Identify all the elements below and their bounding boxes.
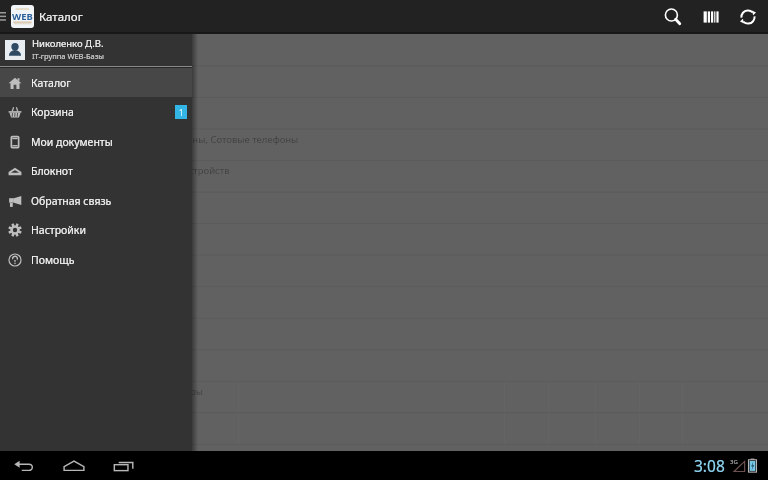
staticText: Каталог [31, 76, 71, 90]
button[interactable]: Блокнот [0, 156, 192, 185]
button[interactable]: Каталог [0, 68, 192, 97]
staticText: Аксессуары [150, 385, 204, 398]
staticText: Каталог [39, 9, 83, 25]
button[interactable]: Scan barcode [692, 0, 727, 33]
button[interactable]: Home [59, 451, 89, 480]
staticText: Блокнот [31, 164, 73, 178]
button[interactable]: Корзина [0, 97, 192, 126]
staticText: Николенко Д.В. [32, 37, 104, 50]
button[interactable] [0, 97, 768, 129]
button[interactable]: Open navigation drawer [0, 0, 7, 33]
button[interactable]: Настройки [0, 215, 192, 244]
staticText: 1 [179, 107, 184, 118]
button[interactable] [0, 34, 768, 66]
button[interactable] [0, 223, 768, 255]
button[interactable] [0, 255, 768, 287]
staticText: Мои документы [31, 135, 113, 149]
button[interactable]: Search [654, 0, 692, 33]
button[interactable]: Мои документы [0, 127, 192, 156]
button[interactable] [0, 349, 768, 381]
staticText: Корзина [31, 105, 74, 119]
staticText: WEB [12, 10, 33, 23]
button[interactable] [0, 318, 768, 350]
button[interactable]: Помощь [0, 245, 192, 274]
staticText: Обратная связь [31, 194, 112, 208]
staticText: Чехлы для устройств [133, 164, 230, 177]
button[interactable]: Back [9, 451, 39, 480]
staticText: Настройки [31, 223, 86, 237]
staticText: Мобильные телефоны, Сотовые телефоны [102, 133, 299, 146]
staticText: 3:08 [694, 455, 725, 476]
button[interactable]: Обратная связь [0, 186, 192, 215]
button[interactable]: Чехлы для устройств [0, 160, 768, 192]
button[interactable] [0, 412, 768, 444]
button[interactable]: Refresh [727, 0, 768, 33]
staticText: 3G [730, 458, 738, 466]
button[interactable] [0, 66, 768, 98]
staticText: IT-группа WEB-Базы [32, 51, 105, 61]
button[interactable] [0, 192, 768, 224]
button[interactable]: Мобильные телефоны, Сотовые телефоны [0, 129, 768, 161]
button[interactable]: Аксессуары [0, 381, 768, 413]
button[interactable]: Николенко Д.В. [0, 33, 192, 66]
button[interactable] [0, 286, 768, 318]
staticText: Помощь [31, 253, 75, 267]
button[interactable]: Recent apps [109, 451, 139, 480]
